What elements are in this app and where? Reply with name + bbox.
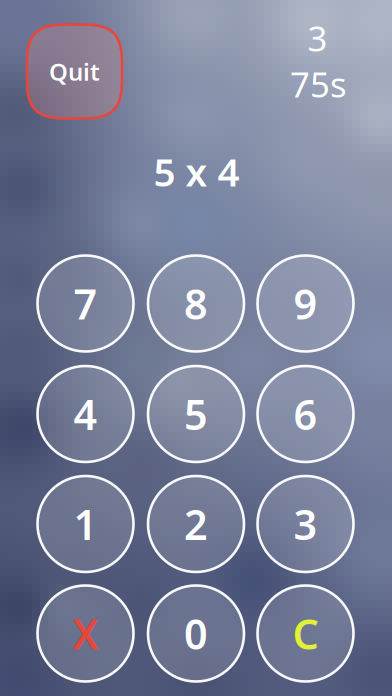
staticText: 3	[307, 15, 327, 61]
staticText: 3	[293, 497, 317, 551]
staticText: 1	[73, 497, 97, 551]
staticText: 75s	[290, 61, 347, 107]
staticText: 5	[184, 387, 208, 441]
staticText: Quit	[49, 56, 100, 87]
button[interactable]: 1	[37, 476, 133, 572]
staticText: 9	[293, 276, 317, 331]
button[interactable]: C	[257, 585, 353, 681]
button[interactable]: 0	[148, 585, 244, 681]
staticText: 6	[293, 387, 317, 441]
staticText: 5 x 4	[153, 146, 239, 197]
button[interactable]: 3	[257, 476, 353, 572]
staticText: X	[72, 606, 98, 661]
button[interactable]: 4	[37, 366, 133, 462]
staticText: 0	[184, 606, 208, 661]
button[interactable]: X	[37, 585, 133, 681]
staticText: 7	[73, 276, 97, 331]
button[interactable]: 6	[257, 366, 353, 462]
button[interactable]: 7	[37, 255, 133, 351]
button[interactable]: 8	[148, 255, 244, 351]
staticText: 8	[184, 276, 208, 331]
staticText: C	[292, 606, 318, 661]
button[interactable]: 2	[148, 476, 244, 572]
staticText: 2	[184, 497, 208, 551]
button[interactable]: 9	[257, 255, 353, 351]
staticText: 4	[73, 387, 97, 441]
button[interactable]: 5	[148, 366, 244, 462]
button[interactable]: Quit	[27, 24, 122, 118]
